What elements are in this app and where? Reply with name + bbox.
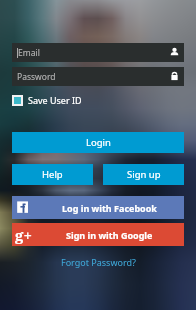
- button[interactable]: Forgot Password?: [57, 252, 140, 272]
- staticText: g+: [15, 225, 32, 245]
- button[interactable]: Login: [12, 132, 184, 153]
- button[interactable]: Sign up: [103, 164, 184, 185]
- staticText: Sign up: [127, 168, 161, 181]
- staticText: Login: [86, 136, 111, 149]
- staticText: Help: [42, 168, 63, 181]
- other: Google: [12, 223, 35, 246]
- staticText: Save User ID: [28, 94, 82, 106]
- staticText: Log in with Facebook: [62, 202, 157, 214]
- button[interactable]: Email: [12, 43, 184, 62]
- button[interactable]: Log in with Facebook: [12, 196, 184, 219]
- staticText: Password: [17, 71, 56, 83]
- staticText: Email: [18, 47, 40, 59]
- button[interactable]: Password: [12, 67, 184, 86]
- staticText: Sign in with Google: [66, 229, 153, 241]
- button[interactable]: Help: [12, 164, 93, 185]
- button[interactable]: Save User ID: [12, 94, 82, 106]
- button[interactable]: Google: [12, 223, 184, 246]
